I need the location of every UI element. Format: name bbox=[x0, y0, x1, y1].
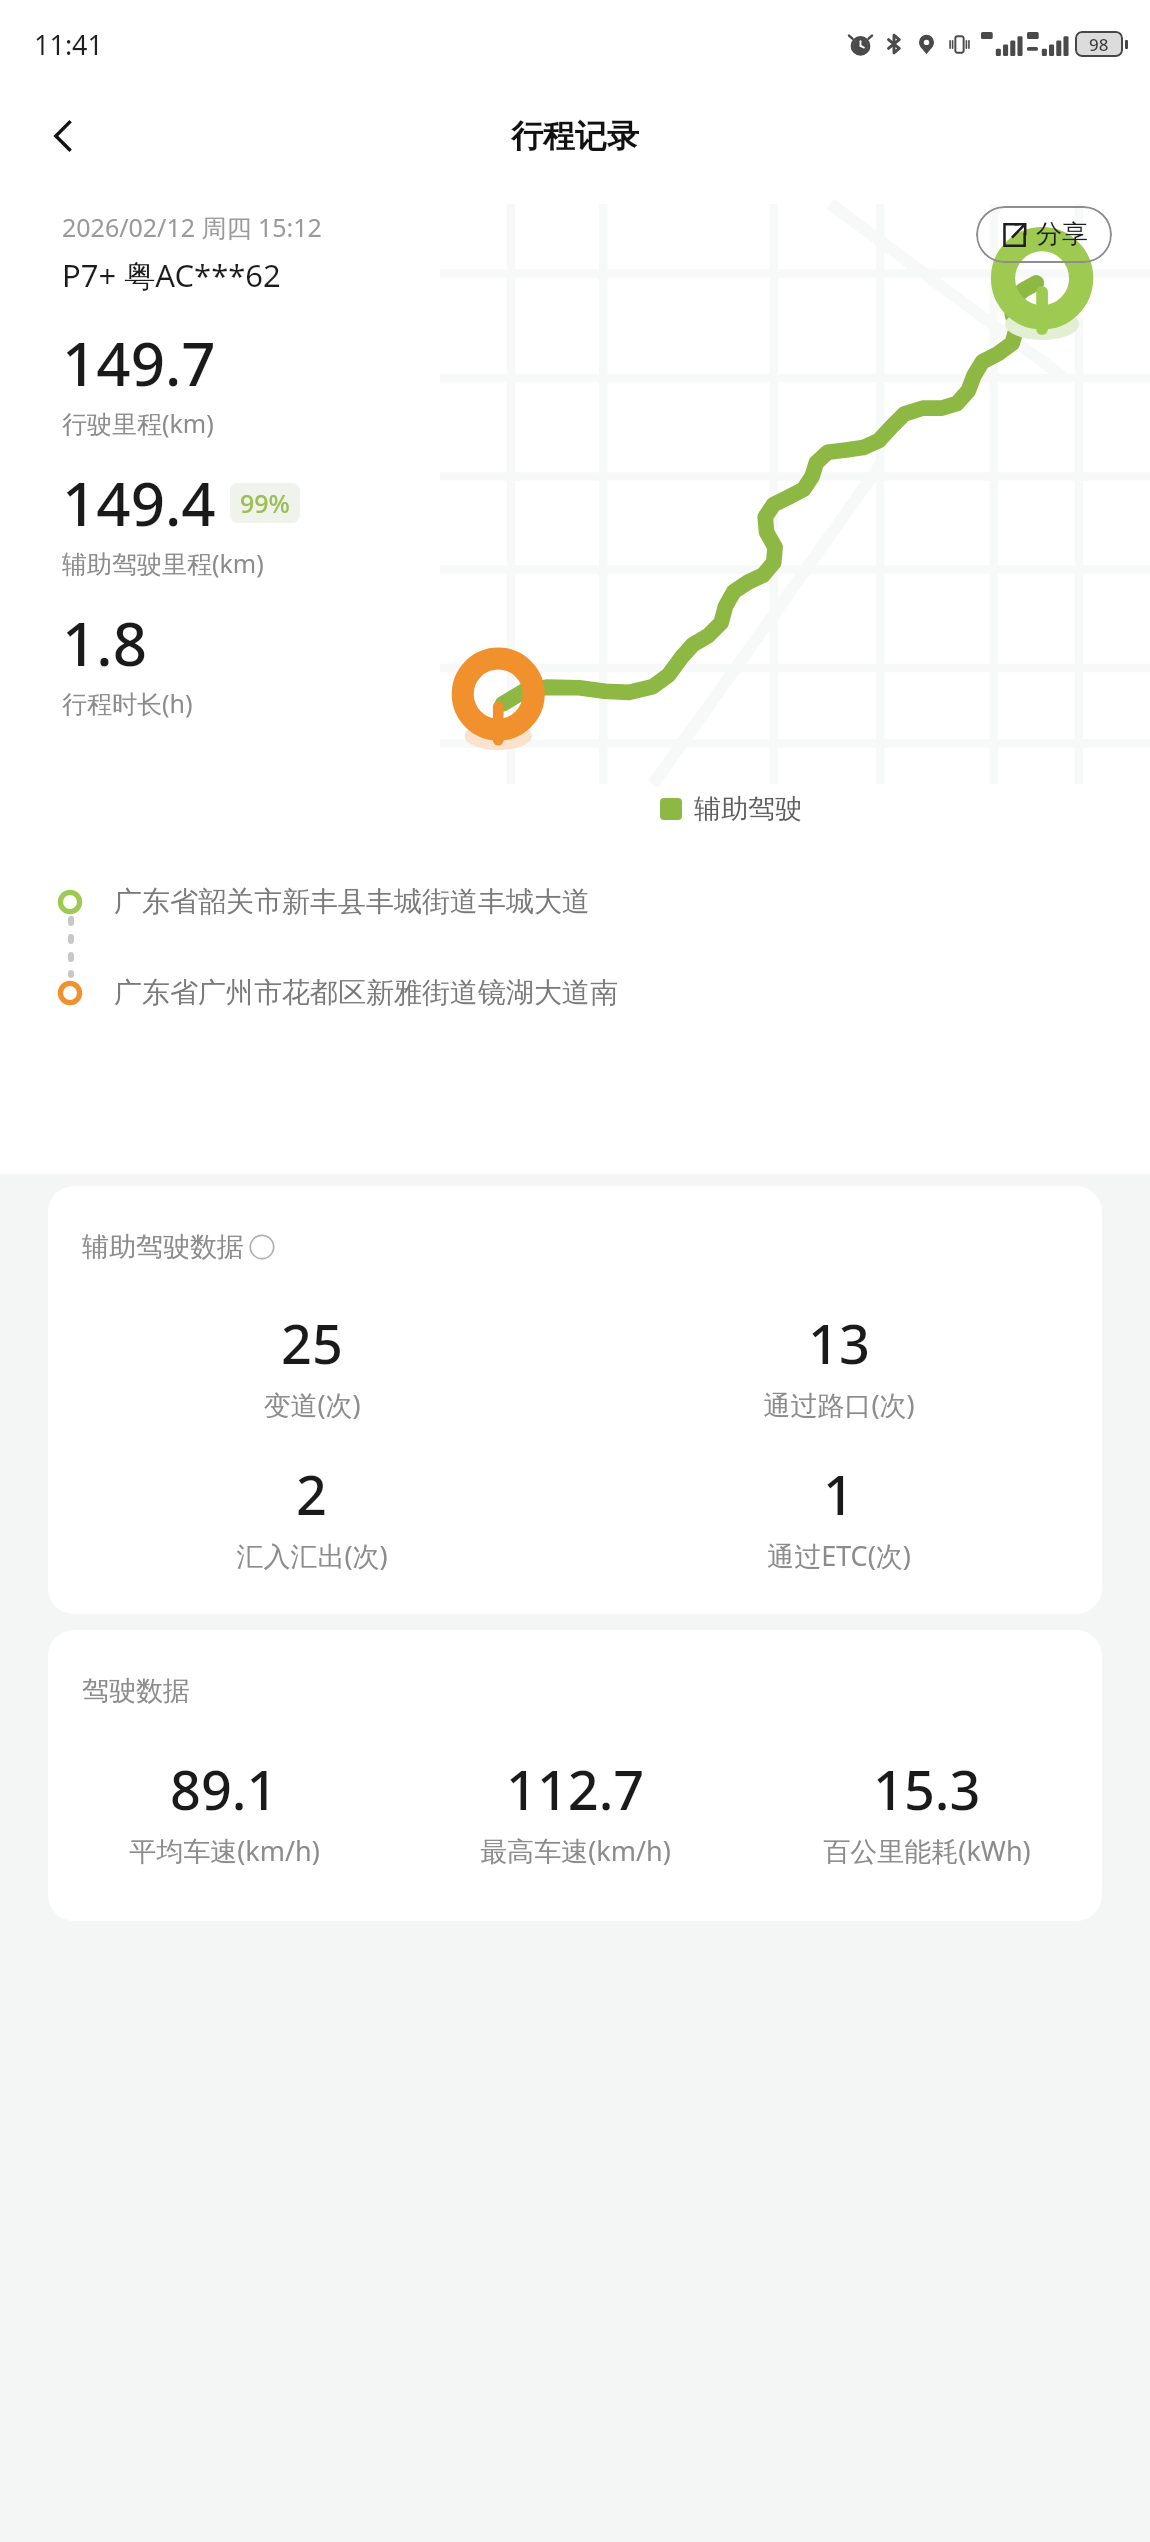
staticText: 2 bbox=[296, 1457, 327, 1531]
button[interactable]: 辅助驾驶数据 bbox=[48, 1186, 1102, 1614]
staticText: 通过路口(次) bbox=[763, 1386, 915, 1423]
staticText: 行程时长(h) bbox=[62, 686, 193, 720]
staticText: 1 bbox=[823, 1457, 854, 1531]
staticText: 2026/02/12 周四 15:12 bbox=[62, 210, 322, 244]
staticText: 11:41 bbox=[34, 26, 104, 63]
staticText: 13 bbox=[808, 1306, 870, 1380]
staticText: 112.7 bbox=[506, 1752, 645, 1826]
staticText: 辅助驾驶里程(km) bbox=[62, 546, 264, 580]
staticText: 广东省广州市花都区新雅街道镜湖大道南 bbox=[114, 975, 618, 1010]
staticText: 1.8 bbox=[62, 602, 147, 684]
staticText: 百公里能耗(kWh) bbox=[823, 1832, 1031, 1869]
staticText: 汇入汇出(次) bbox=[236, 1537, 388, 1574]
staticText: 行程记录 bbox=[511, 116, 639, 156]
staticText: 平均车速(km/h) bbox=[129, 1832, 320, 1869]
staticText: P7+ 粤AC***62 bbox=[62, 254, 281, 296]
staticText: 149.4 bbox=[62, 462, 216, 544]
staticText: 149.7 bbox=[62, 322, 216, 404]
button[interactable]: 分享 bbox=[976, 206, 1112, 263]
staticText: 15.3 bbox=[873, 1752, 981, 1826]
staticText: 25 bbox=[281, 1306, 343, 1380]
staticText: 通过ETC(次) bbox=[767, 1537, 911, 1574]
staticText: 89.1 bbox=[170, 1752, 278, 1826]
staticText: 最高车速(km/h) bbox=[480, 1832, 671, 1869]
staticText: 分享 bbox=[1036, 218, 1088, 251]
staticText: 广东省韶关市新丰县丰城街道丰城大道 bbox=[114, 884, 590, 919]
staticText: 辅助驾驶数据 bbox=[82, 1230, 244, 1264]
staticText: 驾驶数据 bbox=[82, 1674, 190, 1708]
staticText: 行驶里程(km) bbox=[62, 406, 214, 440]
button[interactable]: 驾驶数据 bbox=[48, 1630, 1102, 1921]
staticText: 99% bbox=[240, 486, 290, 520]
staticText: 98 bbox=[1089, 33, 1109, 56]
staticText: 变道(次) bbox=[263, 1386, 361, 1423]
staticText: 辅助驾驶 bbox=[694, 792, 802, 826]
button[interactable]: Back bbox=[32, 104, 96, 168]
other: Help bbox=[249, 1234, 275, 1260]
